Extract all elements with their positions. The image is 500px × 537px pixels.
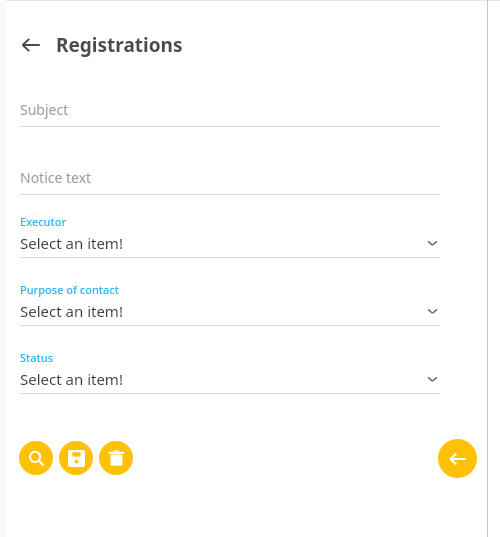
staticText: Notice text: [20, 168, 92, 187]
button[interactable]: Status: [20, 350, 440, 394]
button[interactable]: Save: [59, 441, 93, 475]
staticText: Select an item!: [20, 301, 426, 321]
staticText: Registrations: [56, 32, 183, 58]
button[interactable]: Subject: [20, 100, 440, 127]
button[interactable]: Purpose of contact: [20, 282, 440, 326]
button[interactable]: Notice text: [20, 168, 440, 195]
staticText: Select an item!: [20, 369, 426, 389]
staticText: Purpose of contact: [20, 282, 119, 297]
staticText: Executor: [20, 214, 67, 229]
staticText: Status: [20, 350, 54, 365]
button[interactable]: Back: [14, 28, 48, 62]
button[interactable]: Delete: [99, 441, 133, 475]
button[interactable]: Executor: [20, 214, 440, 258]
staticText: Select an item!: [20, 233, 426, 253]
staticText: Subject: [20, 100, 69, 119]
button[interactable]: Back: [438, 439, 477, 478]
button[interactable]: Search: [19, 441, 53, 475]
